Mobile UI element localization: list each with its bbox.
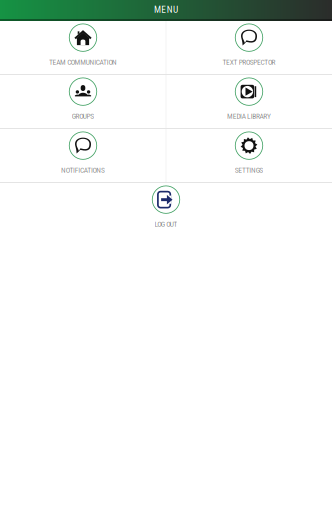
button[interactable]: TEXT PROSPECTOR bbox=[166, 21, 332, 74]
staticText: GROUPS bbox=[72, 112, 94, 121]
button[interactable]: NOTIFICATIONS bbox=[0, 129, 166, 182]
staticText: TEXT PROSPECTOR bbox=[222, 58, 275, 67]
staticText: MEDIA LIBRARY bbox=[227, 112, 271, 121]
button[interactable]: GROUPS bbox=[0, 75, 166, 128]
button[interactable]: LOG OUT bbox=[83, 183, 249, 236]
button[interactable]: TEAM COMMUNICATION bbox=[0, 21, 166, 74]
staticText: MENU bbox=[154, 4, 178, 15]
staticText: TEAM COMMUNICATION bbox=[49, 58, 117, 67]
button[interactable]: SETTINGS bbox=[166, 129, 332, 182]
staticText: LOG OUT bbox=[154, 220, 177, 229]
staticText: SETTINGS bbox=[235, 166, 263, 175]
button[interactable]: MEDIA LIBRARY bbox=[166, 75, 332, 128]
staticText: NOTIFICATIONS bbox=[61, 166, 105, 175]
